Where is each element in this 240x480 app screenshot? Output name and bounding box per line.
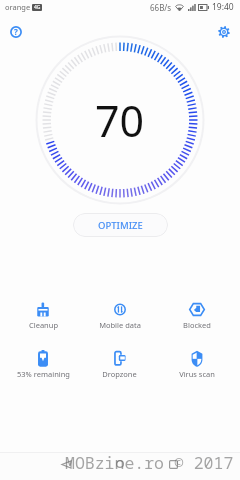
button[interactable]: 53% remaining xyxy=(5,346,81,383)
staticText: 53% remaining xyxy=(17,369,70,379)
staticText: Blocked xyxy=(183,320,211,330)
staticText: MOBzine.ro © 2017 xyxy=(65,451,234,473)
staticText: ? xyxy=(14,26,18,37)
button[interactable]: Blocked xyxy=(158,297,235,334)
button[interactable]: Virus scan xyxy=(158,346,235,383)
staticText: Dropzone xyxy=(102,369,137,379)
button[interactable]: Mobile data xyxy=(81,297,158,334)
button[interactable]: Dropzone xyxy=(81,346,158,383)
staticText: 19:40 xyxy=(212,1,234,13)
staticText: 4G xyxy=(34,4,41,11)
button[interactable]: Recents xyxy=(161,452,185,476)
staticText: Cleanup xyxy=(29,320,58,330)
staticText: orange xyxy=(5,2,31,12)
button[interactable]: Back xyxy=(54,452,78,476)
staticText: Mobile data xyxy=(99,320,141,330)
staticText: 66B/s xyxy=(150,2,172,13)
button[interactable]: Settings xyxy=(211,19,236,44)
button[interactable]: Cleanup xyxy=(5,297,81,334)
button[interactable]: OPTIMIZE xyxy=(73,213,168,237)
staticText: OPTIMIZE xyxy=(98,219,143,232)
button[interactable]: Home xyxy=(108,452,132,476)
button[interactable]: Help xyxy=(3,19,28,44)
staticText: Virus scan xyxy=(179,369,215,379)
staticText: 70 xyxy=(95,91,145,150)
